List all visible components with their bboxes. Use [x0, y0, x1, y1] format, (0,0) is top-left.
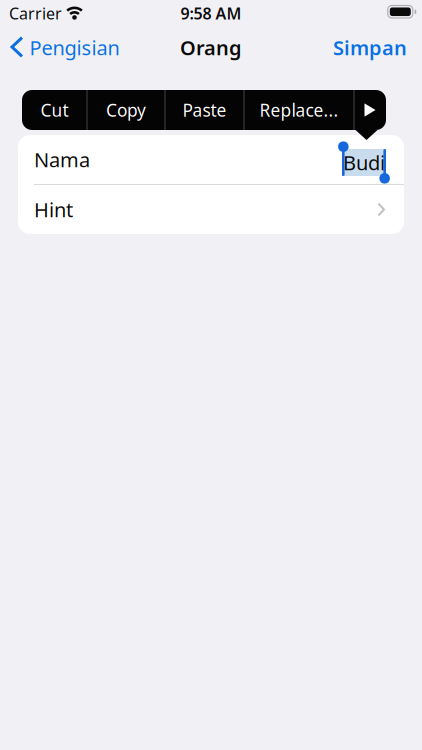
- staticText: Budi: [343, 149, 385, 176]
- staticText: Copy: [106, 98, 146, 121]
- button[interactable]: Hint: [18, 185, 404, 234]
- button[interactable]: Copy: [87, 90, 164, 130]
- staticText: Nama: [34, 146, 90, 173]
- button[interactable]: Paste: [165, 90, 243, 130]
- staticText: Orang: [180, 34, 242, 61]
- staticText: Hint: [34, 196, 73, 223]
- staticText: Pengisian: [29, 34, 119, 61]
- button[interactable]: Nama: [18, 135, 404, 184]
- staticText: Carrier: [9, 3, 62, 24]
- button[interactable]: Simpan: [323, 27, 422, 68]
- staticText: 9:58 AM: [180, 3, 241, 24]
- button[interactable]: More actions: [354, 90, 385, 130]
- staticText: Simpan: [333, 34, 407, 61]
- staticText: Cut: [40, 98, 68, 121]
- button[interactable]: Pengisian: [0, 27, 127, 68]
- staticText: Replace...: [259, 98, 338, 121]
- staticText: Paste: [182, 98, 226, 121]
- button[interactable]: Cut: [22, 90, 86, 130]
- button[interactable]: Replace...: [244, 90, 353, 130]
